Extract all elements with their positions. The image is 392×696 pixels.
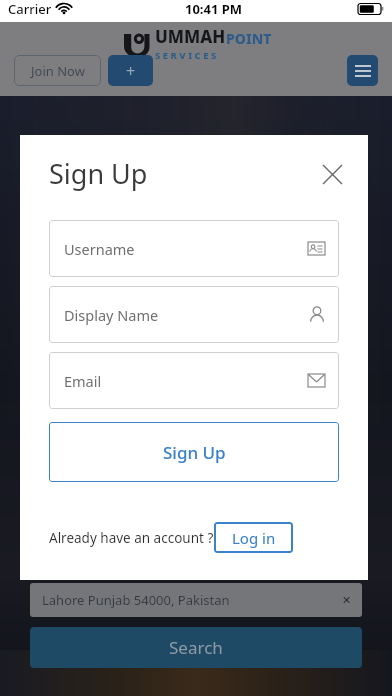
staticText: UMMAH — [155, 25, 226, 48]
staticText: Sign Up — [49, 155, 148, 192]
staticText: Log in — [232, 528, 276, 548]
staticText: Sign Up — [163, 441, 226, 464]
button[interactable]: Clear — [342, 594, 352, 607]
staticText: Email — [64, 371, 102, 391]
button[interactable]: Display Name — [49, 286, 339, 343]
button[interactable]: Email — [49, 352, 339, 409]
button[interactable]: Username — [49, 220, 339, 277]
staticText: Already have an account ? — [49, 529, 214, 547]
staticText: 10:41 PM — [185, 0, 243, 18]
button[interactable]: Sign Up — [49, 422, 339, 482]
staticText: + — [126, 60, 136, 82]
staticText: Join Now — [31, 62, 85, 80]
staticText: Search — [169, 636, 223, 659]
staticText: Lahore Punjab 54000, Pakistan — [42, 591, 230, 609]
staticText: ✕ — [342, 594, 352, 607]
staticText: POINT — [226, 29, 272, 48]
button[interactable]: Lahore Punjab 54000, Pakistan — [30, 583, 362, 617]
staticText: Username — [64, 239, 135, 259]
staticText: Carrier — [8, 0, 52, 18]
button[interactable]: Search — [30, 627, 362, 668]
staticText: Display Name — [64, 305, 159, 325]
button[interactable]: Join Now — [14, 55, 101, 86]
button[interactable]: Add — [108, 55, 153, 86]
button[interactable]: Log in — [214, 522, 293, 553]
staticText: S E R V I C E S — [155, 49, 217, 62]
button[interactable]: Close — [319, 161, 345, 187]
button[interactable]: Menu — [347, 55, 378, 86]
